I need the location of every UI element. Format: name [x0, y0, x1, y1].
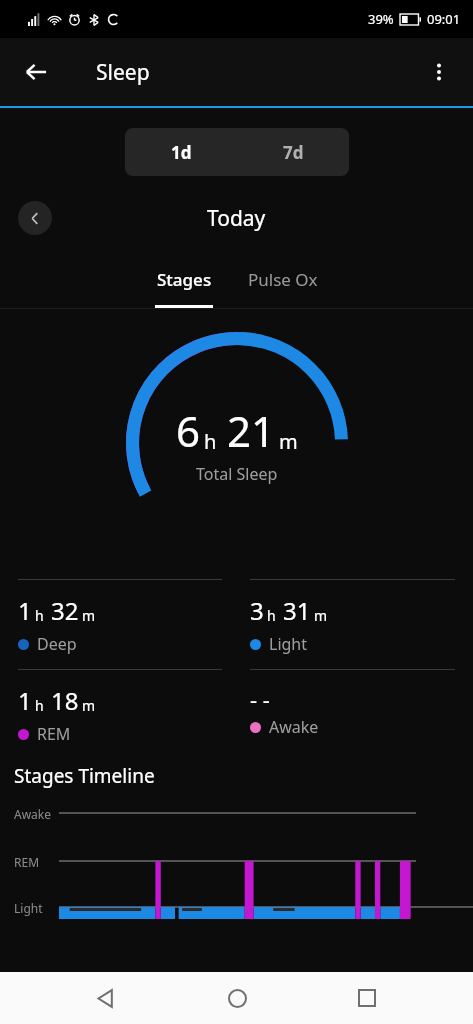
button[interactable]: 7d: [237, 128, 349, 176]
button[interactable]: 3: [250, 579, 455, 655]
button[interactable]: Pulse Ox: [228, 258, 338, 308]
staticText: 1: [18, 684, 32, 717]
staticText: 3: [250, 594, 264, 627]
staticText: m: [82, 606, 96, 625]
staticText: Light: [269, 633, 308, 655]
staticText: 39%: [368, 10, 394, 28]
button[interactable]: Home: [213, 974, 261, 1022]
button[interactable]: 1: [18, 579, 222, 655]
staticText: Total Sleep: [196, 463, 278, 485]
staticText: Pulse Ox: [248, 268, 318, 291]
button[interactable]: Back: [82, 974, 130, 1022]
button[interactable]: 1d: [125, 128, 237, 176]
staticText: m: [82, 696, 96, 715]
button[interactable]: - -: [250, 669, 455, 738]
staticText: Awake: [14, 806, 52, 822]
staticText: Stages: [157, 268, 212, 291]
staticText: h: [204, 428, 217, 455]
button[interactable]: Back: [12, 48, 60, 96]
staticText: Light: [14, 900, 43, 916]
button[interactable]: 1: [18, 669, 222, 745]
staticText: 7d: [283, 141, 304, 164]
button[interactable]: Stages: [140, 258, 228, 308]
staticText: h: [267, 606, 276, 625]
button[interactable]: Previous day: [18, 201, 52, 235]
staticText: Stages Timeline: [14, 763, 155, 789]
staticText: 31: [283, 594, 311, 627]
staticText: h: [35, 696, 44, 715]
staticText: 18: [51, 684, 79, 717]
staticText: Awake: [269, 716, 319, 738]
staticText: 09:01: [427, 10, 461, 28]
button[interactable]: More options: [415, 48, 463, 96]
staticText: Deep: [37, 633, 77, 655]
staticText: REM: [37, 723, 71, 745]
staticText: 32: [51, 594, 79, 627]
staticText: m: [314, 606, 328, 625]
staticText: Sleep: [96, 58, 150, 87]
staticText: 21: [227, 402, 276, 459]
staticText: REM: [14, 854, 40, 870]
staticText: 1d: [171, 141, 192, 164]
staticText: - -: [250, 684, 270, 714]
staticText: m: [279, 428, 298, 455]
button[interactable]: Recent apps: [343, 974, 391, 1022]
staticText: h: [35, 606, 44, 625]
staticText: 1: [18, 594, 32, 627]
staticText: Today: [207, 204, 266, 233]
staticText: 6: [176, 402, 201, 459]
